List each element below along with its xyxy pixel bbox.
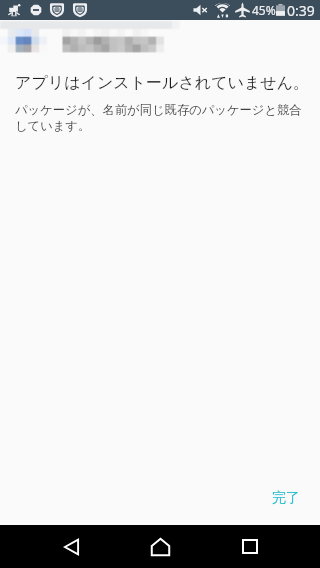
- button[interactable]: Recent apps: [227, 525, 272, 568]
- staticText: アプリはインストールされていません。: [15, 73, 309, 93]
- staticText: 45%: [252, 2, 276, 18]
- staticText: 0:39: [287, 1, 315, 20]
- button[interactable]: 完了: [264, 483, 308, 513]
- staticText: 完了: [272, 489, 300, 507]
- button[interactable]: Back: [49, 525, 94, 568]
- button[interactable]: Home: [138, 525, 183, 568]
- staticText: パッケージが、名前が同じ既存のパッケージと競合 しています。: [15, 102, 302, 134]
